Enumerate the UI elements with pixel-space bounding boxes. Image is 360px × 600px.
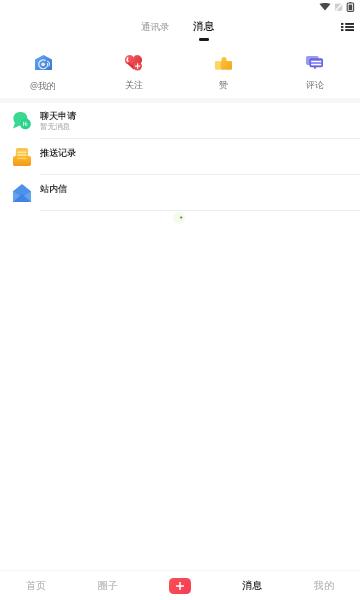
staticText: 首页 bbox=[26, 579, 46, 592]
staticText: 消息 bbox=[193, 20, 214, 33]
button[interactable]: 评论 bbox=[281, 47, 348, 90]
staticText: 站内信 bbox=[40, 183, 67, 194]
button[interactable]: 推送记录 bbox=[0, 139, 360, 174]
button[interactable]: Menu list bbox=[336, 16, 358, 38]
button[interactable]: 首页 bbox=[0, 570, 72, 600]
staticText: 聊天申请 bbox=[40, 110, 76, 121]
staticText: 推送记录 bbox=[40, 147, 76, 158]
button[interactable]: 通讯录 bbox=[132, 16, 178, 38]
staticText: 暂无消息 bbox=[40, 122, 70, 131]
button[interactable]: 圈子 bbox=[72, 570, 144, 600]
staticText: 通讯录 bbox=[141, 21, 170, 33]
staticText: 消息 bbox=[242, 579, 262, 592]
staticText: 评论 bbox=[306, 79, 324, 90]
staticText: 我的 bbox=[314, 579, 334, 592]
staticText: @我的 bbox=[30, 79, 57, 91]
button[interactable]: 我的 bbox=[288, 570, 360, 600]
button[interactable]: 消息 bbox=[216, 570, 288, 600]
button[interactable]: 关注 bbox=[100, 47, 167, 90]
staticText: 关注 bbox=[125, 79, 143, 90]
button[interactable]: 消息 bbox=[183, 14, 223, 42]
staticText: 赞 bbox=[219, 79, 228, 90]
button[interactable]: Add post bbox=[169, 578, 191, 594]
button[interactable]: @我的 bbox=[10, 47, 77, 91]
staticText: 圈子 bbox=[98, 579, 118, 592]
button[interactable]: 聊天申请 bbox=[0, 103, 360, 138]
button[interactable]: 站内信 bbox=[0, 175, 360, 210]
button[interactable]: 赞 bbox=[190, 47, 257, 90]
